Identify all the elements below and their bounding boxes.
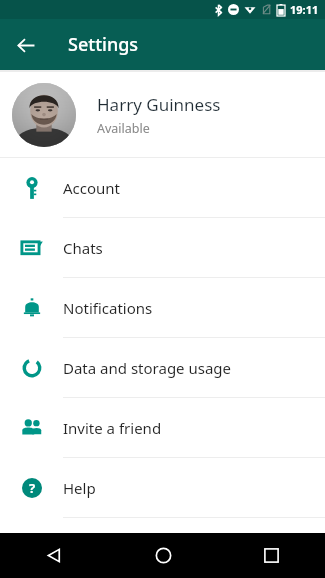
button[interactable]: Data and storage usage	[0, 338, 325, 397]
button[interactable]: Back	[6, 25, 46, 65]
button[interactable]: Harry Guinness	[0, 72, 325, 157]
staticText: ?	[29, 479, 36, 497]
staticText: Settings	[68, 32, 139, 57]
staticText: Data and storage usage	[63, 358, 232, 378]
button[interactable]: Back	[0, 533, 109, 578]
button[interactable]: Invite a friend	[0, 398, 325, 457]
button[interactable]: Recent apps	[217, 533, 325, 578]
staticText: Available	[97, 120, 150, 137]
staticText: Notifications	[63, 298, 153, 318]
button[interactable]: Home	[109, 533, 217, 578]
button[interactable]: Account	[0, 158, 325, 217]
button[interactable]: Notifications	[0, 278, 325, 337]
button[interactable]: ?	[0, 458, 325, 517]
staticText: 19:11	[290, 2, 319, 17]
staticText: Help	[63, 478, 96, 498]
staticText: Invite a friend	[63, 418, 162, 438]
staticText: Account	[63, 178, 121, 198]
button[interactable]: Chats	[0, 218, 325, 277]
staticText: Chats	[63, 238, 103, 258]
staticText: Harry Guinness	[97, 93, 221, 116]
